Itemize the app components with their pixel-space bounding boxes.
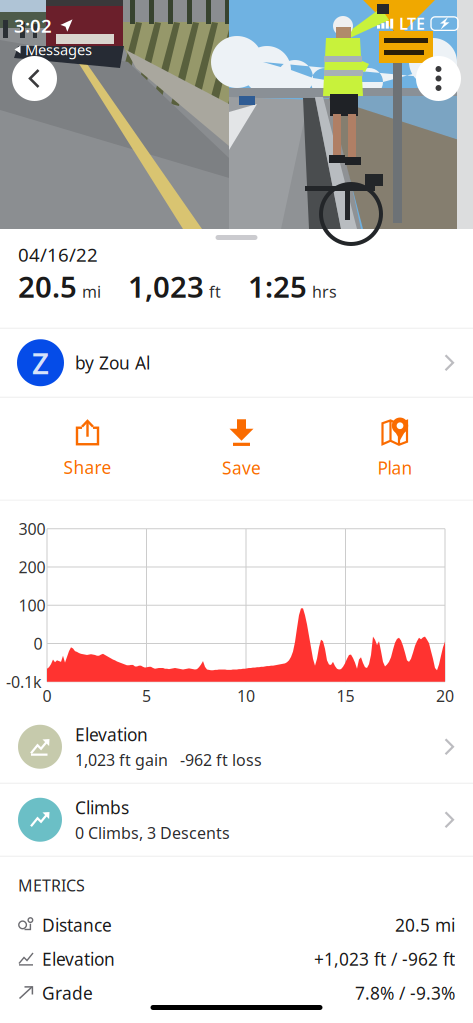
staticText: 100 [18,595,45,616]
staticText: 0 [33,633,42,654]
staticText: +1,023 ft / -962 ft [314,947,455,970]
staticText: 300 [18,518,45,539]
staticText: Plan [377,456,412,479]
button[interactable]: Elevation [0,711,473,783]
staticText: 5 [142,685,151,706]
staticText: 04/16/22 [18,242,98,267]
staticText: 10 [237,685,255,706]
button[interactable]: Back [12,56,57,101]
staticText: 15 [336,685,354,706]
staticText: 0 Climbs, 3 Descents [75,822,230,843]
staticText: -0.1k [6,671,42,692]
staticText: Elevation [42,947,115,970]
staticText: Elevation [75,723,148,746]
button[interactable]: Share [10,398,164,500]
staticText: 1,023 ft gain -962 ft loss [75,749,262,770]
staticText: 20.5 mi [395,913,455,936]
staticText: by Zou Al [75,351,150,374]
staticText: Save [222,456,261,479]
staticText: ft [209,281,221,302]
staticText: 0 [42,685,51,706]
staticText: Share [63,456,111,479]
staticText: hrs [312,281,337,302]
staticText: 7.8% / -9.3% [355,981,455,1004]
staticText: Grade [42,981,93,1004]
staticText: mi [82,281,101,302]
staticText: 1,023 [128,267,204,306]
staticText: LTE [399,13,425,34]
staticText: 20.5 [18,267,77,306]
staticText: 200 [18,556,45,578]
staticText: 1:25 [248,267,307,306]
staticText: Messages [25,40,92,59]
button[interactable]: Z [0,329,473,397]
staticText: Climbs [75,796,129,819]
staticText: Distance [42,913,112,936]
button[interactable]: More options [416,56,461,101]
button[interactable]: Climbs [0,784,473,856]
staticText: Z [32,343,49,382]
staticText: METRICS [18,875,85,896]
staticText: 20 [436,685,454,706]
button[interactable]: Save [164,398,318,500]
button[interactable]: Plan [318,398,471,500]
staticText: 3:02 [14,13,52,38]
